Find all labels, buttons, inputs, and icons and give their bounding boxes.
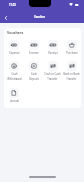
button[interactable]: Journal xyxy=(4,88,24,103)
staticText: 11:23 xyxy=(9,3,16,7)
staticText: Cash Withdrawal xyxy=(7,72,22,80)
staticText: Journal xyxy=(10,99,19,103)
button[interactable]: Income xyxy=(24,40,43,55)
staticText: Expense xyxy=(9,51,20,55)
staticText: Purchase xyxy=(66,51,78,55)
button[interactable]: Receipt xyxy=(43,40,62,55)
button[interactable]: Bank to Bank Transfer xyxy=(62,61,81,80)
button[interactable]: Cash Deposit xyxy=(24,61,43,80)
button[interactable]: Cash Withdrawal xyxy=(4,61,24,80)
staticText: Income xyxy=(29,51,39,55)
button[interactable]: Cash to Cash Transfer xyxy=(43,61,62,80)
button[interactable]: Back xyxy=(0,12,12,24)
button[interactable]: Expense xyxy=(4,40,24,55)
staticText: Receipt xyxy=(48,51,58,55)
staticText: Vouchers xyxy=(7,30,24,35)
staticText: Cash to Cash Transfer xyxy=(44,72,61,80)
staticText: Voucher xyxy=(34,15,46,19)
staticText: Bank to Bank Transfer xyxy=(63,72,80,80)
staticText: Cash Deposit xyxy=(29,72,39,80)
button[interactable]: Purchase xyxy=(62,40,81,55)
